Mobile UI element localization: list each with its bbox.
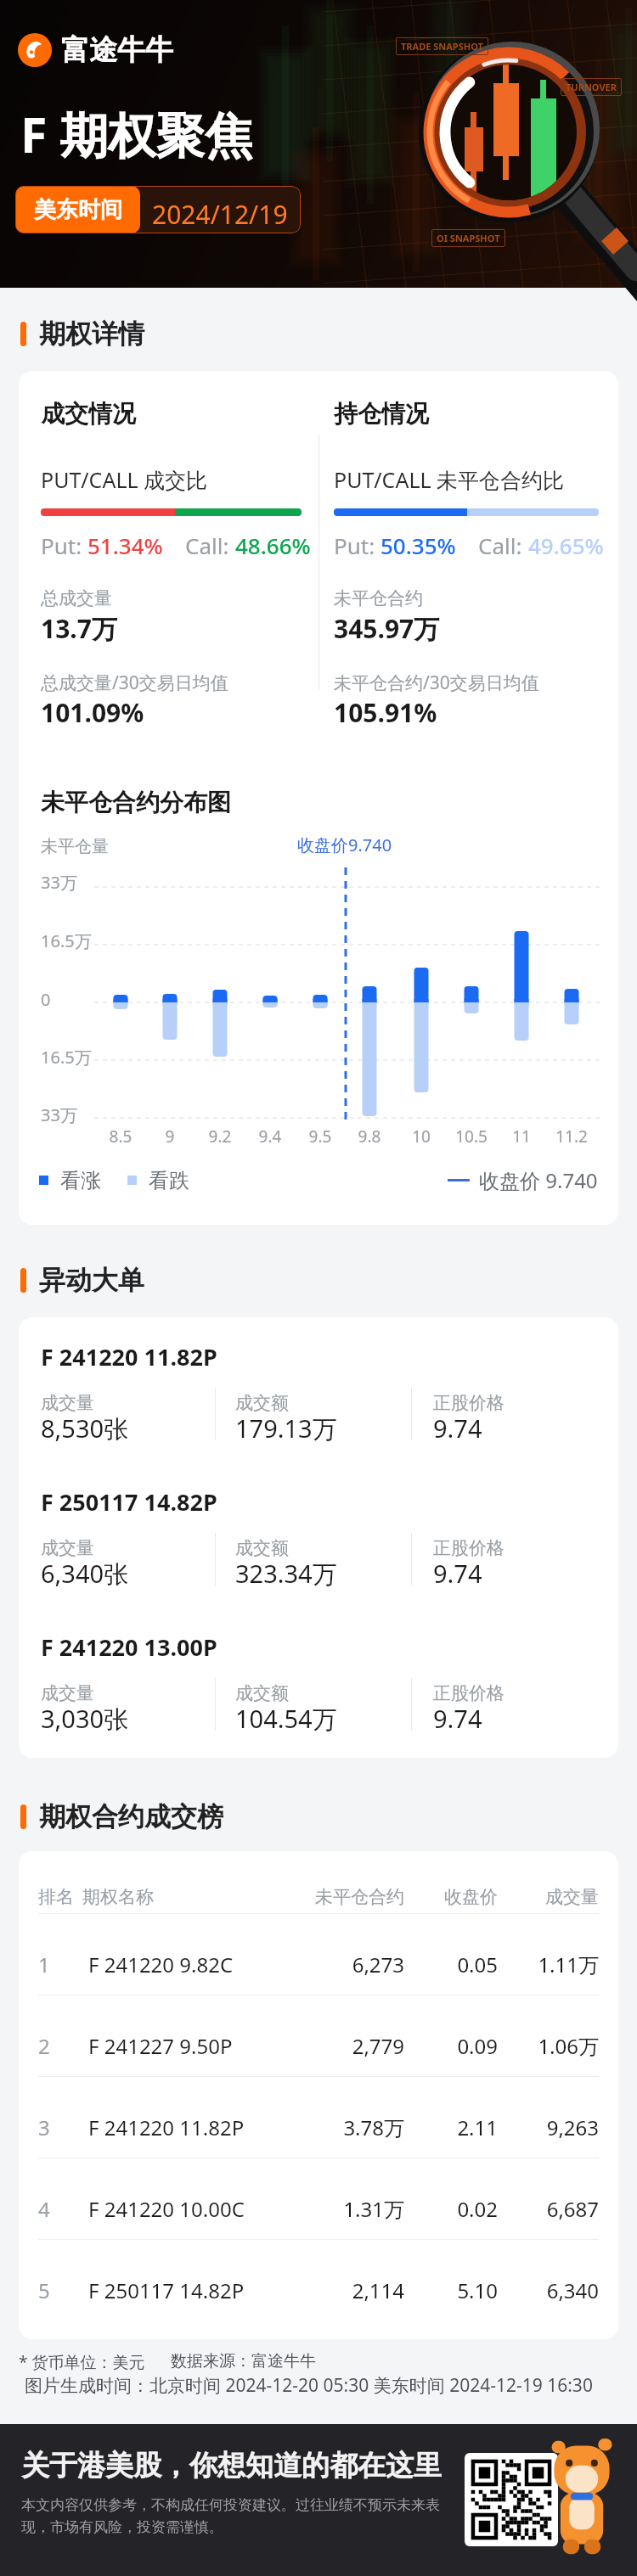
staticText: 9.74 — [433, 1702, 482, 1735]
staticText: 收盘价 9.740 — [479, 1166, 598, 1194]
staticText: 2,114 — [234, 2276, 404, 2304]
staticText: TURNOVER — [566, 81, 617, 93]
staticText: 现，市场有风险，投资需谨慎。 — [21, 2518, 223, 2536]
staticText: 51.34% — [87, 530, 163, 560]
staticText: 8,530张 — [41, 1411, 129, 1445]
staticText: F 241220 13.00P — [41, 1631, 217, 1663]
staticText: 正股价格 — [433, 1682, 505, 1704]
staticText: F 241220 9.82C — [88, 1950, 234, 1978]
staticText: 看跌 — [149, 1168, 189, 1193]
staticText: 收盘价 — [328, 1886, 498, 1908]
staticText: 1.31万 — [234, 2195, 404, 2223]
staticText: 11 — [496, 1125, 547, 1148]
staticText: 1.11万 — [429, 1950, 599, 1978]
staticText: Call: — [185, 530, 235, 560]
staticText: 总成交量/30交易日均值 — [41, 671, 228, 695]
button[interactable]: F 241220 13.00P — [19, 1608, 618, 1748]
staticText: 总成交量 — [41, 587, 112, 609]
staticText: 成交量 — [41, 1392, 94, 1414]
staticText: 104.54万 — [235, 1702, 337, 1736]
button[interactable]: F 241220 11.82P — [19, 1317, 618, 1457]
staticText: 49.65% — [528, 530, 604, 560]
staticText: 未平仓合约 — [234, 1886, 404, 1908]
staticText: 成交额 — [235, 1682, 289, 1704]
staticText: 美东时间 — [34, 196, 122, 224]
staticText: 持仓情况 — [334, 399, 429, 429]
button[interactable]: F 250117 14.82P — [19, 1462, 618, 1602]
staticText: Put: — [41, 530, 87, 560]
staticText: 9.74 — [433, 1557, 482, 1590]
staticText: 0 — [41, 988, 51, 1011]
staticText: 1.06万 — [429, 2032, 599, 2060]
staticText: 50.35% — [381, 530, 456, 560]
staticText: 3.78万 — [234, 2113, 404, 2141]
staticText: 成交情况 — [41, 399, 136, 429]
staticText: TRADE SNAPSHOT — [401, 40, 483, 53]
staticText: 3 — [38, 2113, 50, 2141]
staticText: 关于港美股，你想知道的都在这里 — [21, 2448, 442, 2483]
staticText: 2,779 — [234, 2032, 404, 2060]
staticText: F 241220 10.00C — [88, 2195, 245, 2223]
staticText: PUT/CALL 成交比 — [41, 465, 208, 494]
staticText: F 期权聚焦 — [20, 101, 254, 167]
staticText: 8.5 — [95, 1125, 146, 1148]
staticText: 6,340张 — [41, 1557, 129, 1591]
staticText: 11.2 — [546, 1125, 597, 1148]
staticText: 6,340 — [429, 2276, 599, 2304]
staticText: 9.74 — [433, 1411, 482, 1445]
button[interactable]: 2 — [19, 1995, 618, 2076]
staticText: 异动大单 — [39, 1264, 144, 1297]
staticText: 0.09 — [328, 2032, 498, 2060]
staticText: 2 — [38, 2032, 50, 2060]
staticText: Call: — [478, 530, 528, 560]
staticText: F 250117 14.82P — [41, 1486, 217, 1518]
staticText: PUT/CALL 未平仓合约比 — [334, 465, 565, 494]
staticText: 正股价格 — [433, 1537, 505, 1559]
staticText: 16.5万 — [41, 1046, 92, 1069]
staticText: F 250117 14.82P — [88, 2276, 245, 2304]
button[interactable]: 5 — [19, 2239, 618, 2332]
staticText: 101.09% — [41, 695, 144, 730]
staticText: 16.5万 — [41, 929, 92, 952]
staticText: 2024/12/19 — [152, 197, 288, 232]
staticText: 9,263 — [429, 2113, 599, 2141]
staticText: 345.97万 — [334, 611, 440, 646]
staticText: 10.5 — [446, 1125, 497, 1148]
staticText: 9.5 — [295, 1125, 346, 1148]
staticText: 未平仓合约/30交易日均值 — [334, 671, 539, 695]
staticText: 成交量 — [429, 1886, 599, 1908]
staticText: 数据来源：富途牛牛 — [171, 2351, 316, 2371]
staticText: 9.8 — [344, 1125, 395, 1148]
staticText: 2.11 — [328, 2113, 498, 2141]
staticText: 10 — [396, 1125, 447, 1148]
staticText: 13.7万 — [41, 611, 117, 646]
staticText: 9.2 — [194, 1125, 245, 1148]
staticText: 期权名称 — [82, 1886, 154, 1908]
staticText: 期权详情 — [39, 317, 144, 351]
staticText: F 241220 11.82P — [88, 2113, 245, 2141]
button[interactable]: 1 — [19, 1913, 618, 1995]
staticText: Put: — [334, 530, 381, 560]
staticText: 5 — [38, 2276, 50, 2304]
button[interactable]: 4 — [19, 2158, 618, 2239]
staticText: 成交量 — [41, 1537, 94, 1559]
staticText: 33万 — [41, 1103, 77, 1126]
staticText: 9 — [144, 1125, 195, 1148]
staticText: 1 — [38, 1950, 50, 1978]
staticText: 48.66% — [235, 530, 311, 560]
staticText: 0.05 — [328, 1950, 498, 1978]
button[interactable]: 3 — [19, 2076, 618, 2158]
staticText: 期权合约成交榜 — [39, 1800, 223, 1833]
staticText: 成交额 — [235, 1392, 289, 1414]
staticText: 105.91% — [334, 695, 437, 730]
staticText: 成交额 — [235, 1537, 289, 1559]
staticText: 排名 — [38, 1886, 74, 1908]
staticText: 收盘价9.740 — [297, 833, 392, 856]
staticText: 4 — [38, 2195, 50, 2223]
staticText: 179.13万 — [235, 1411, 337, 1445]
staticText: 成交量 — [41, 1682, 94, 1704]
staticText: 图片生成时间：北京时间 2024-12-20 05:30 美东时间 2024-1… — [25, 2373, 593, 2398]
staticText: 未平仓合约 — [334, 587, 423, 609]
staticText: 6,687 — [429, 2195, 599, 2223]
staticText: 看涨 — [60, 1168, 101, 1193]
